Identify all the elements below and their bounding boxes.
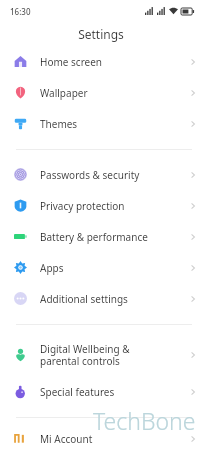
staticText: Passwords & security [40,168,170,182]
button[interactable]: Mi Account [0,427,202,450]
button[interactable]: Themes [0,108,202,139]
staticText: TechBone [93,405,196,436]
staticText: Battery & performance [40,230,170,244]
button[interactable]: Digital Wellbeing & parental controls [0,334,202,376]
button[interactable]: Battery & performance [0,221,202,252]
button[interactable]: Passwords & security [0,159,202,190]
button[interactable]: Privacy protection [0,190,202,221]
staticText: Digital Wellbeing & parental controls [40,342,170,368]
button[interactable]: Special features [0,376,202,407]
button[interactable]: Wallpaper [0,77,202,108]
staticText: Special features [40,385,170,399]
staticText: 16:30 [10,6,31,17]
staticText: Settings [78,26,124,42]
staticText: Privacy protection [40,199,170,213]
button[interactable]: Home screen [0,46,202,77]
button[interactable]: Apps [0,252,202,283]
staticText: Apps [40,261,170,275]
staticText: Home screen [40,55,170,69]
staticText: Wallpaper [40,86,170,100]
staticText: Mi Account [40,432,170,446]
staticText: Themes [40,117,170,131]
staticText: Additional settings [40,292,170,306]
button[interactable]: Additional settings [0,283,202,314]
